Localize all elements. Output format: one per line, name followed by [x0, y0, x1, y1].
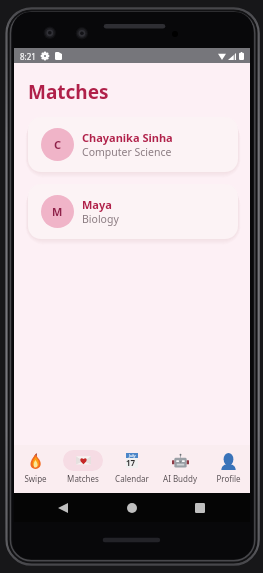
staticText: C	[54, 137, 62, 152]
staticText: Matches	[67, 473, 99, 484]
button[interactable]: Swipe	[11, 450, 59, 484]
button[interactable]: AI Buddy	[156, 450, 204, 484]
staticText: Profile	[216, 473, 241, 484]
staticText: Maya	[82, 197, 112, 212]
button[interactable]: Recent apps	[190, 498, 210, 518]
staticText: AI Buddy	[163, 473, 197, 484]
staticText: 8:21	[20, 51, 36, 62]
button[interactable]: C	[28, 117, 238, 172]
staticText: July	[129, 453, 136, 458]
button[interactable]: M	[28, 184, 238, 239]
button[interactable]: July	[108, 450, 156, 484]
staticText: Calendar	[115, 473, 149, 484]
staticText: Biology	[82, 212, 119, 226]
staticText: Chayanika Sinha	[82, 130, 173, 145]
staticText: 17	[126, 457, 136, 467]
staticText: Computer Science	[82, 145, 172, 159]
button[interactable]: Profile	[204, 450, 252, 484]
button[interactable]: Matches	[59, 450, 107, 484]
button[interactable]: Home	[122, 498, 142, 518]
button[interactable]: Back	[53, 498, 73, 518]
staticText: M	[52, 204, 63, 219]
staticText: Matches	[28, 79, 109, 105]
staticText: Swipe	[24, 473, 47, 484]
